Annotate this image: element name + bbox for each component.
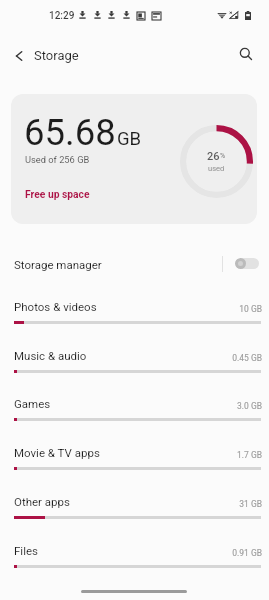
staticText: Movie & TV apps: [14, 446, 100, 459]
staticText: 31 GB: [0, 499, 262, 509]
button[interactable]: Photos & videos: [0, 294, 269, 342]
staticText: Files: [14, 544, 38, 557]
button[interactable]: Other apps: [0, 489, 269, 537]
staticText: Storage manager: [14, 258, 102, 271]
staticText: %: [220, 152, 226, 160]
button[interactable]: Music & audio: [0, 343, 269, 391]
staticText: Storage: [34, 48, 79, 63]
staticText: Music & audio: [14, 349, 87, 362]
staticText: Other apps: [14, 495, 70, 508]
staticText: Games: [14, 397, 51, 410]
staticText: 1.7 GB: [0, 450, 262, 460]
button[interactable]: 65.68: [11, 94, 257, 224]
staticText: 65.68: [24, 111, 116, 154]
staticText: 3.0 GB: [0, 401, 262, 411]
button[interactable]: Search: [233, 41, 259, 67]
button[interactable]: Storage manager toggle: [235, 258, 259, 269]
staticText: 0.45 GB: [0, 353, 262, 363]
staticText: 0.91 GB: [0, 548, 262, 558]
staticText: GB: [117, 128, 142, 150]
staticText: 10 GB: [0, 304, 262, 314]
button[interactable]: Games: [0, 391, 269, 439]
button[interactable]: Movie & TV apps: [0, 440, 269, 488]
button[interactable]: Storage manager: [0, 245, 269, 285]
staticText: 12:29: [49, 10, 75, 22]
staticText: Used of 256 GB: [25, 154, 90, 165]
staticText: 26: [207, 150, 220, 163]
staticText: Photos & videos: [14, 300, 97, 313]
button[interactable]: Files: [0, 538, 269, 586]
staticText: used: [208, 164, 225, 173]
button[interactable]: Back: [5, 42, 32, 69]
button[interactable]: Free up space: [25, 188, 90, 200]
